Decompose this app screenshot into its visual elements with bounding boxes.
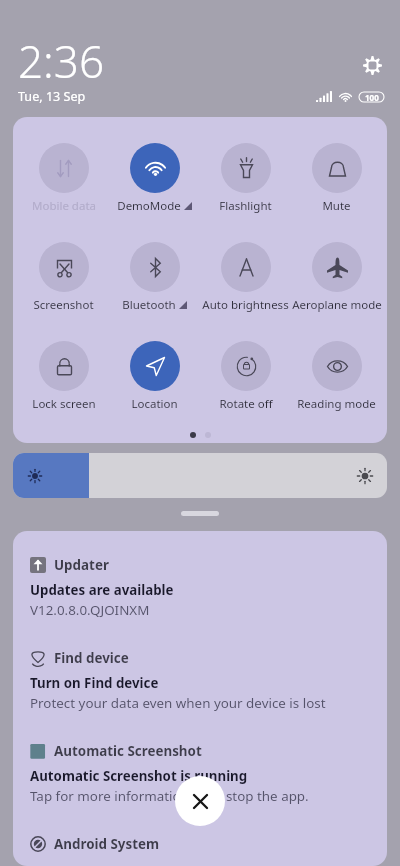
staticText: Find device: [54, 649, 129, 667]
staticText: V12.0.8.0.QJOINXM: [30, 601, 150, 619]
staticText: Location: [131, 396, 178, 412]
staticText: Tue, 13 Sep: [18, 88, 86, 105]
staticText: Aeroplane mode: [292, 297, 382, 313]
button[interactable]: Auto brightness: [200, 242, 291, 313]
button[interactable]: Brightness: [13, 453, 387, 498]
button[interactable]: Bluetooth: [109, 242, 200, 313]
button[interactable]: Mobile data: [18, 143, 109, 214]
staticText: Screenshot: [33, 297, 94, 313]
staticText: Lock screen: [32, 396, 96, 412]
staticText: Protect your data even when your device …: [30, 694, 326, 712]
button[interactable]: Aeroplane mode: [291, 242, 382, 313]
staticText: Mobile data: [32, 198, 96, 214]
button[interactable]: Reading mode: [291, 341, 382, 412]
staticText: DemoMode: [117, 198, 181, 214]
staticText: 2:36: [18, 31, 105, 91]
staticText: Turn on Find device: [30, 674, 159, 692]
button[interactable]: Automatic Screenshot: [30, 717, 373, 810]
button[interactable]: Location: [109, 341, 200, 412]
staticText: Android System: [54, 835, 160, 853]
staticText: 100: [365, 92, 379, 102]
staticText: Auto brightness: [202, 297, 289, 313]
staticText: Mute: [322, 198, 351, 214]
staticText: Automatic Screenshot: [54, 742, 202, 760]
button[interactable]: Mute: [291, 143, 382, 214]
button[interactable]: DemoMode: [109, 143, 200, 214]
staticText: Updates are available: [30, 581, 174, 599]
staticText: Rotate off: [219, 396, 273, 412]
button[interactable]: Rotate off: [200, 341, 291, 412]
button[interactable]: Find device: [30, 624, 373, 717]
staticText: Bluetooth: [122, 297, 176, 313]
staticText: Tap for more information or to stop the …: [30, 787, 309, 805]
staticText: Flashlight: [219, 198, 272, 214]
button[interactable]: Lock screen: [18, 341, 109, 412]
staticText: Reading mode: [297, 396, 376, 412]
button[interactable]: Settings: [360, 53, 385, 78]
button[interactable]: Flashlight: [200, 143, 291, 214]
button[interactable]: Android System: [30, 810, 373, 866]
staticText: Updater: [54, 556, 109, 574]
button[interactable]: Screenshot: [18, 242, 109, 313]
button[interactable]: Close: [175, 776, 225, 826]
button[interactable]: Updater: [30, 531, 373, 624]
staticText: Automatic Screenshot is running: [30, 767, 248, 785]
